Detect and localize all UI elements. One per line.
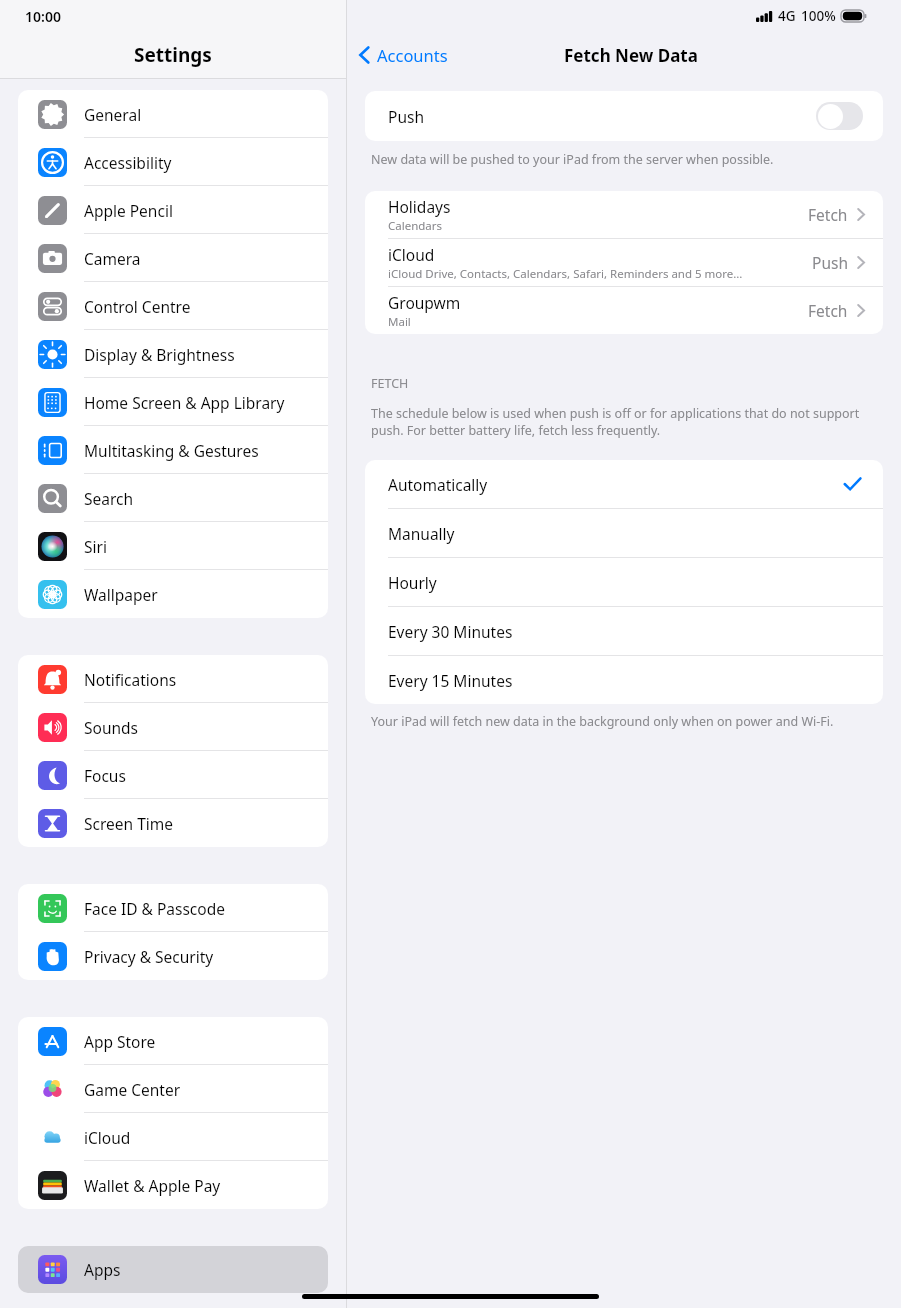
button[interactable]: Display & Brightness <box>18 330 328 378</box>
button[interactable]: Control Centre <box>18 282 328 330</box>
button[interactable]: Groupwm <box>365 287 883 334</box>
other: Push toggle <box>816 102 863 130</box>
button[interactable]: Push <box>365 91 883 141</box>
button[interactable]: Focus <box>18 751 328 799</box>
button[interactable]: Home Screen & App Library <box>18 378 328 426</box>
staticText: Fetch <box>808 300 848 321</box>
staticText: Every 30 Minutes <box>388 621 861 642</box>
button[interactable]: Wallpaper <box>18 570 328 618</box>
staticText: 10:00 <box>25 7 61 26</box>
staticText: iCloud Drive, Contacts, Calendars, Safar… <box>388 266 743 282</box>
staticText: Screen Time <box>84 813 173 834</box>
button[interactable]: Automatically <box>365 460 883 509</box>
button[interactable]: Siri <box>18 522 328 570</box>
staticText: Apps <box>84 1259 121 1280</box>
button[interactable]: Search <box>18 474 328 522</box>
staticText: FETCH <box>371 375 409 392</box>
staticText: Mail <box>388 314 411 330</box>
staticText: Push <box>812 252 848 273</box>
button[interactable]: Accounts <box>347 35 460 75</box>
staticText: Face ID & Passcode <box>84 898 225 919</box>
staticText: Game Center <box>84 1079 181 1100</box>
staticText: App Store <box>84 1031 156 1052</box>
staticText: Search <box>84 488 134 509</box>
button[interactable]: Apple Pencil <box>18 186 328 234</box>
button[interactable]: Holidays <box>365 191 883 239</box>
button[interactable]: Accessibility <box>18 138 328 186</box>
staticText: Focus <box>84 765 126 786</box>
button[interactable]: Notifications <box>18 655 328 703</box>
staticText: Privacy & Security <box>84 946 214 967</box>
staticText: Your iPad will fetch new data in the bac… <box>371 713 834 730</box>
button[interactable]: Every 30 Minutes <box>365 607 883 656</box>
staticText: Apple Pencil <box>84 200 173 221</box>
staticText: Control Centre <box>84 296 191 317</box>
staticText: Fetch <box>808 204 848 225</box>
button[interactable]: Game Center <box>18 1065 328 1113</box>
staticText: Groupwm <box>388 292 461 313</box>
staticText: iCloud <box>388 244 435 265</box>
staticText: Holidays <box>388 196 451 217</box>
staticText: Push <box>388 106 816 127</box>
staticText: The schedule below is used when push is … <box>371 405 877 438</box>
button[interactable]: Multitasking & Gestures <box>18 426 328 474</box>
button[interactable]: Hourly <box>365 558 883 607</box>
button[interactable]: iCloud <box>18 1113 328 1161</box>
staticText: Display & Brightness <box>84 344 235 365</box>
staticText: Notifications <box>84 669 177 690</box>
button[interactable]: Sounds <box>18 703 328 751</box>
staticText: Wallpaper <box>84 584 158 605</box>
staticText: Camera <box>84 248 141 269</box>
staticText: Fetch New Data <box>564 44 698 67</box>
staticText: Siri <box>84 536 107 557</box>
staticText: Sounds <box>84 717 139 738</box>
staticText: Accessibility <box>84 152 172 173</box>
button[interactable]: Camera <box>18 234 328 282</box>
button[interactable]: Face ID & Passcode <box>18 884 328 932</box>
staticText: Calendars <box>388 218 443 234</box>
staticText: Manually <box>388 523 861 544</box>
staticText: Wallet & Apple Pay <box>84 1175 221 1196</box>
button[interactable]: Every 15 Minutes <box>365 656 883 704</box>
staticText: Automatically <box>388 474 844 495</box>
button[interactable]: General <box>18 90 328 138</box>
button[interactable]: Manually <box>365 509 883 558</box>
staticText: Settings <box>134 42 212 68</box>
staticText: Every 15 Minutes <box>388 670 861 691</box>
staticText: Multitasking & Gestures <box>84 440 259 461</box>
staticText: Accounts <box>377 44 448 66</box>
button[interactable]: Apps <box>18 1246 328 1293</box>
staticText: 100% <box>801 7 836 25</box>
staticText: 4G <box>778 7 796 25</box>
staticText: Hourly <box>388 572 861 593</box>
button[interactable]: Wallet & Apple Pay <box>18 1161 328 1209</box>
staticText: Home Screen & App Library <box>84 392 285 413</box>
staticText: New data will be pushed to your iPad fro… <box>371 151 774 168</box>
button[interactable]: Privacy & Security <box>18 932 328 980</box>
button[interactable]: iCloud <box>365 239 883 287</box>
button[interactable]: App Store <box>18 1017 328 1065</box>
staticText: iCloud <box>84 1127 131 1148</box>
button[interactable]: Screen Time <box>18 799 328 847</box>
staticText: General <box>84 104 142 125</box>
